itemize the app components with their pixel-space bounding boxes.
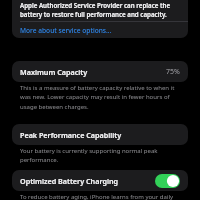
staticText: performance. bbox=[20, 156, 59, 164]
button[interactable]: Maximum Capacity bbox=[12, 61, 188, 82]
staticText: Maximum Capacity bbox=[20, 67, 88, 77]
staticText: Your battery is currently supporting nor… bbox=[20, 147, 158, 155]
staticText: usage between charges. bbox=[20, 103, 89, 111]
staticText: Apple Authorized Service Provider can re… bbox=[20, 1, 171, 9]
button[interactable]: Peak Performance Capability bbox=[12, 124, 188, 145]
staticText: 75% bbox=[166, 67, 180, 77]
staticText: Optimized Battery Charging bbox=[20, 176, 119, 186]
staticText: More about service options... bbox=[20, 26, 112, 35]
button[interactable]: More about service options... bbox=[20, 22, 188, 38]
button[interactable]: Optimized Battery Charging, on bbox=[155, 174, 180, 188]
staticText: battery to restore full performance and … bbox=[20, 10, 167, 18]
staticText: This is a measure of battery capacity re… bbox=[20, 84, 175, 92]
staticText: Peak Performance Capability bbox=[20, 130, 122, 140]
staticText: was new. Lower capacity may result in fe… bbox=[20, 93, 170, 101]
button[interactable]: Optimized Battery Charging bbox=[12, 170, 188, 191]
staticText: To reduce battery aging, iPhone learns f… bbox=[20, 193, 174, 200]
